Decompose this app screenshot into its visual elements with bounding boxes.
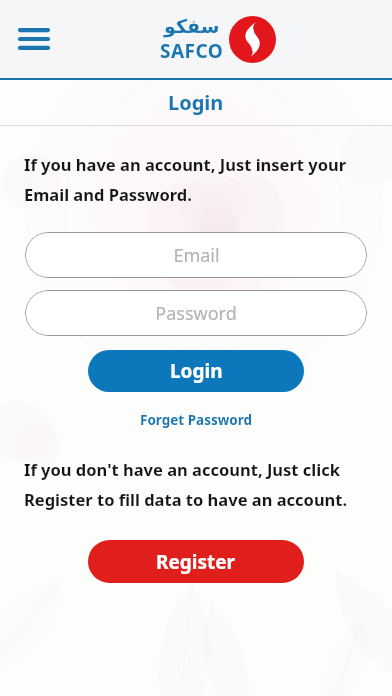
- staticText: Password: [155, 301, 237, 326]
- staticText: Register: [156, 549, 236, 575]
- button[interactable]: Open navigation menu: [10, 15, 58, 63]
- button[interactable]: Login: [88, 350, 304, 392]
- staticText: If you don't have an account, Just click…: [24, 458, 370, 510]
- staticText: Login: [168, 89, 224, 116]
- button[interactable]: Email: [25, 232, 367, 278]
- button[interactable]: Forget Password: [132, 408, 261, 432]
- button[interactable]: Register: [88, 540, 304, 583]
- staticText: Email: [173, 243, 220, 268]
- staticText: Login: [170, 358, 223, 384]
- staticText: Forget Password: [140, 411, 253, 429]
- staticText: سفكو: [164, 15, 220, 37]
- staticText: SAFCO: [160, 38, 224, 64]
- button[interactable]: Password: [25, 290, 367, 336]
- staticText: If you have an account, Just insert your…: [24, 153, 366, 205]
